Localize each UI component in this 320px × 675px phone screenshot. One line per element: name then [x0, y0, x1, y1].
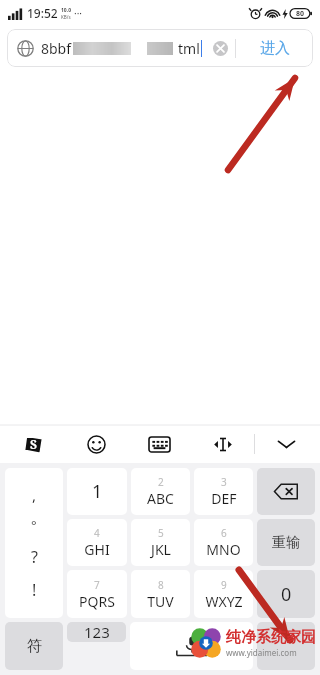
staticText: 重输: [272, 534, 300, 552]
staticText: 8bbf: [41, 39, 72, 58]
staticText: 5: [158, 526, 164, 540]
staticText: 0: [281, 582, 292, 607]
staticText: S: [30, 436, 37, 452]
staticText: 符: [27, 637, 42, 656]
staticText: ABC: [147, 489, 174, 508]
staticText: MNO: [206, 540, 241, 559]
staticText: 19:52: [27, 5, 58, 21]
staticText: !: [32, 579, 37, 601]
staticText: 4: [94, 526, 100, 540]
staticText: 6: [221, 526, 227, 540]
staticText: 2: [158, 475, 164, 489]
button[interactable]: 7: [67, 570, 127, 618]
staticText: tml: [178, 39, 200, 58]
button[interactable]: Sogou input method: [2, 425, 65, 463]
button[interactable]: 符: [5, 622, 63, 670]
button[interactable]: 6: [194, 519, 253, 566]
button[interactable]: Hide keyboard: [255, 425, 318, 463]
staticText: 3: [221, 475, 227, 489]
staticText: www.yidaimei.com: [226, 647, 297, 658]
staticText: KB/s: [61, 14, 71, 20]
button[interactable]: 2: [131, 468, 190, 515]
staticText: 9: [221, 578, 227, 592]
button[interactable]: ,: [5, 468, 63, 618]
button[interactable]: 8: [131, 570, 190, 618]
button[interactable]: Switch keyboard: [128, 425, 191, 463]
button[interactable]: 3: [194, 468, 253, 515]
staticText: 8: [158, 578, 164, 592]
button[interactable]: 1: [67, 468, 127, 515]
staticText: 10.0: [61, 7, 71, 14]
button[interactable]: 5: [131, 519, 190, 566]
staticText: 80: [296, 9, 305, 19]
staticText: ···: [74, 6, 83, 20]
button[interactable]: 重输: [257, 519, 315, 566]
staticText: °: [31, 516, 37, 534]
staticText: WXYZ: [205, 592, 243, 611]
staticText: 123: [84, 622, 110, 642]
button[interactable]: Emoji: [65, 425, 128, 463]
staticText: 进入: [260, 39, 290, 58]
staticText: 7: [94, 578, 100, 592]
button[interactable]: Move cursor: [191, 425, 254, 463]
button[interactable]: 进入: [236, 29, 313, 67]
button[interactable]: Enter: [257, 622, 315, 670]
staticText: TUV: [147, 592, 174, 611]
staticText: ,: [32, 485, 37, 505]
button[interactable]: 4: [67, 519, 127, 566]
button[interactable]: 123: [67, 622, 126, 642]
staticText: DEF: [211, 489, 237, 508]
button[interactable]: Backspace: [257, 468, 315, 515]
staticText: JKL: [151, 540, 171, 559]
staticText: PQRS: [79, 592, 115, 611]
button[interactable]: Space, voice input: [130, 622, 253, 670]
staticText: GHI: [84, 540, 110, 559]
staticText: 纯净系统家园: [226, 628, 316, 647]
staticText: ?: [31, 546, 38, 568]
staticText: 1: [92, 479, 103, 504]
button[interactable]: Clear text: [208, 36, 232, 60]
button[interactable]: 0: [257, 570, 315, 618]
button[interactable]: 9: [194, 570, 253, 618]
